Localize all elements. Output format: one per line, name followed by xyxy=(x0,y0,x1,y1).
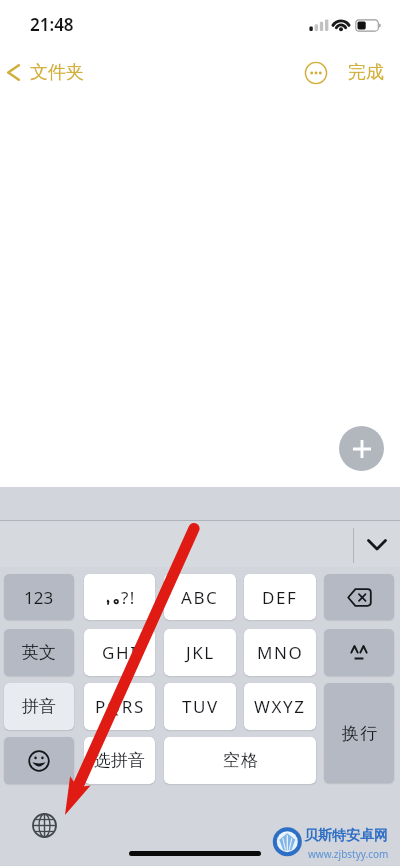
staticText: ?! xyxy=(121,586,136,609)
staticText: 文件夹 xyxy=(30,61,84,84)
button[interactable]: PQRS xyxy=(84,683,155,730)
staticText: TUV xyxy=(182,695,219,718)
button[interactable]: Add xyxy=(339,426,384,471)
staticText: PQRS xyxy=(95,695,145,718)
staticText: JKL xyxy=(186,641,215,664)
staticText: 选拼音 xyxy=(94,750,145,771)
button[interactable]: 123 xyxy=(4,574,74,620)
button[interactable]: ABC xyxy=(164,574,236,620)
button[interactable]: Emoji xyxy=(4,737,74,784)
button[interactable]: 空格 xyxy=(164,737,316,784)
staticText: 空格 xyxy=(222,750,259,771)
staticText: MNO xyxy=(257,641,304,664)
button[interactable]: Switch language xyxy=(26,807,62,843)
button[interactable]: 选拼音 xyxy=(84,737,155,784)
button[interactable]: 拼音 xyxy=(4,683,74,730)
staticText: GHI xyxy=(102,641,138,664)
button[interactable]: 换行 xyxy=(324,683,394,783)
staticText: 123 xyxy=(24,586,54,609)
staticText: 拼音 xyxy=(22,696,56,717)
button[interactable]: 英文 xyxy=(4,629,74,676)
staticText: 换行 xyxy=(341,723,378,744)
button[interactable]: Hide keyboard xyxy=(360,527,394,561)
button[interactable]: TUV xyxy=(164,683,236,730)
staticText: 完成 xyxy=(348,61,384,84)
staticText: 21:48 xyxy=(30,13,74,36)
staticText: DEF xyxy=(262,586,298,609)
staticText: 贝斯特安卓网 xyxy=(304,827,388,845)
staticText: www.zjbstyy.com xyxy=(308,847,389,861)
button[interactable]: WXYZ xyxy=(244,683,316,730)
button[interactable]: MNO xyxy=(244,629,316,676)
button[interactable]: 完成 xyxy=(344,57,388,87)
staticText: ABC xyxy=(181,586,219,609)
button[interactable]: More options xyxy=(299,56,333,90)
button[interactable]: 文件夹 xyxy=(2,55,92,89)
button[interactable]: Backspace xyxy=(324,574,394,620)
button[interactable]: Punctuation xyxy=(84,574,155,620)
staticText: 英文 xyxy=(22,642,56,663)
button[interactable]: GHI xyxy=(84,629,155,676)
button[interactable]: DEF xyxy=(244,574,316,620)
staticText: WXYZ xyxy=(254,695,306,718)
button[interactable]: Emoticons xyxy=(324,629,394,676)
button[interactable]: JKL xyxy=(164,629,236,676)
